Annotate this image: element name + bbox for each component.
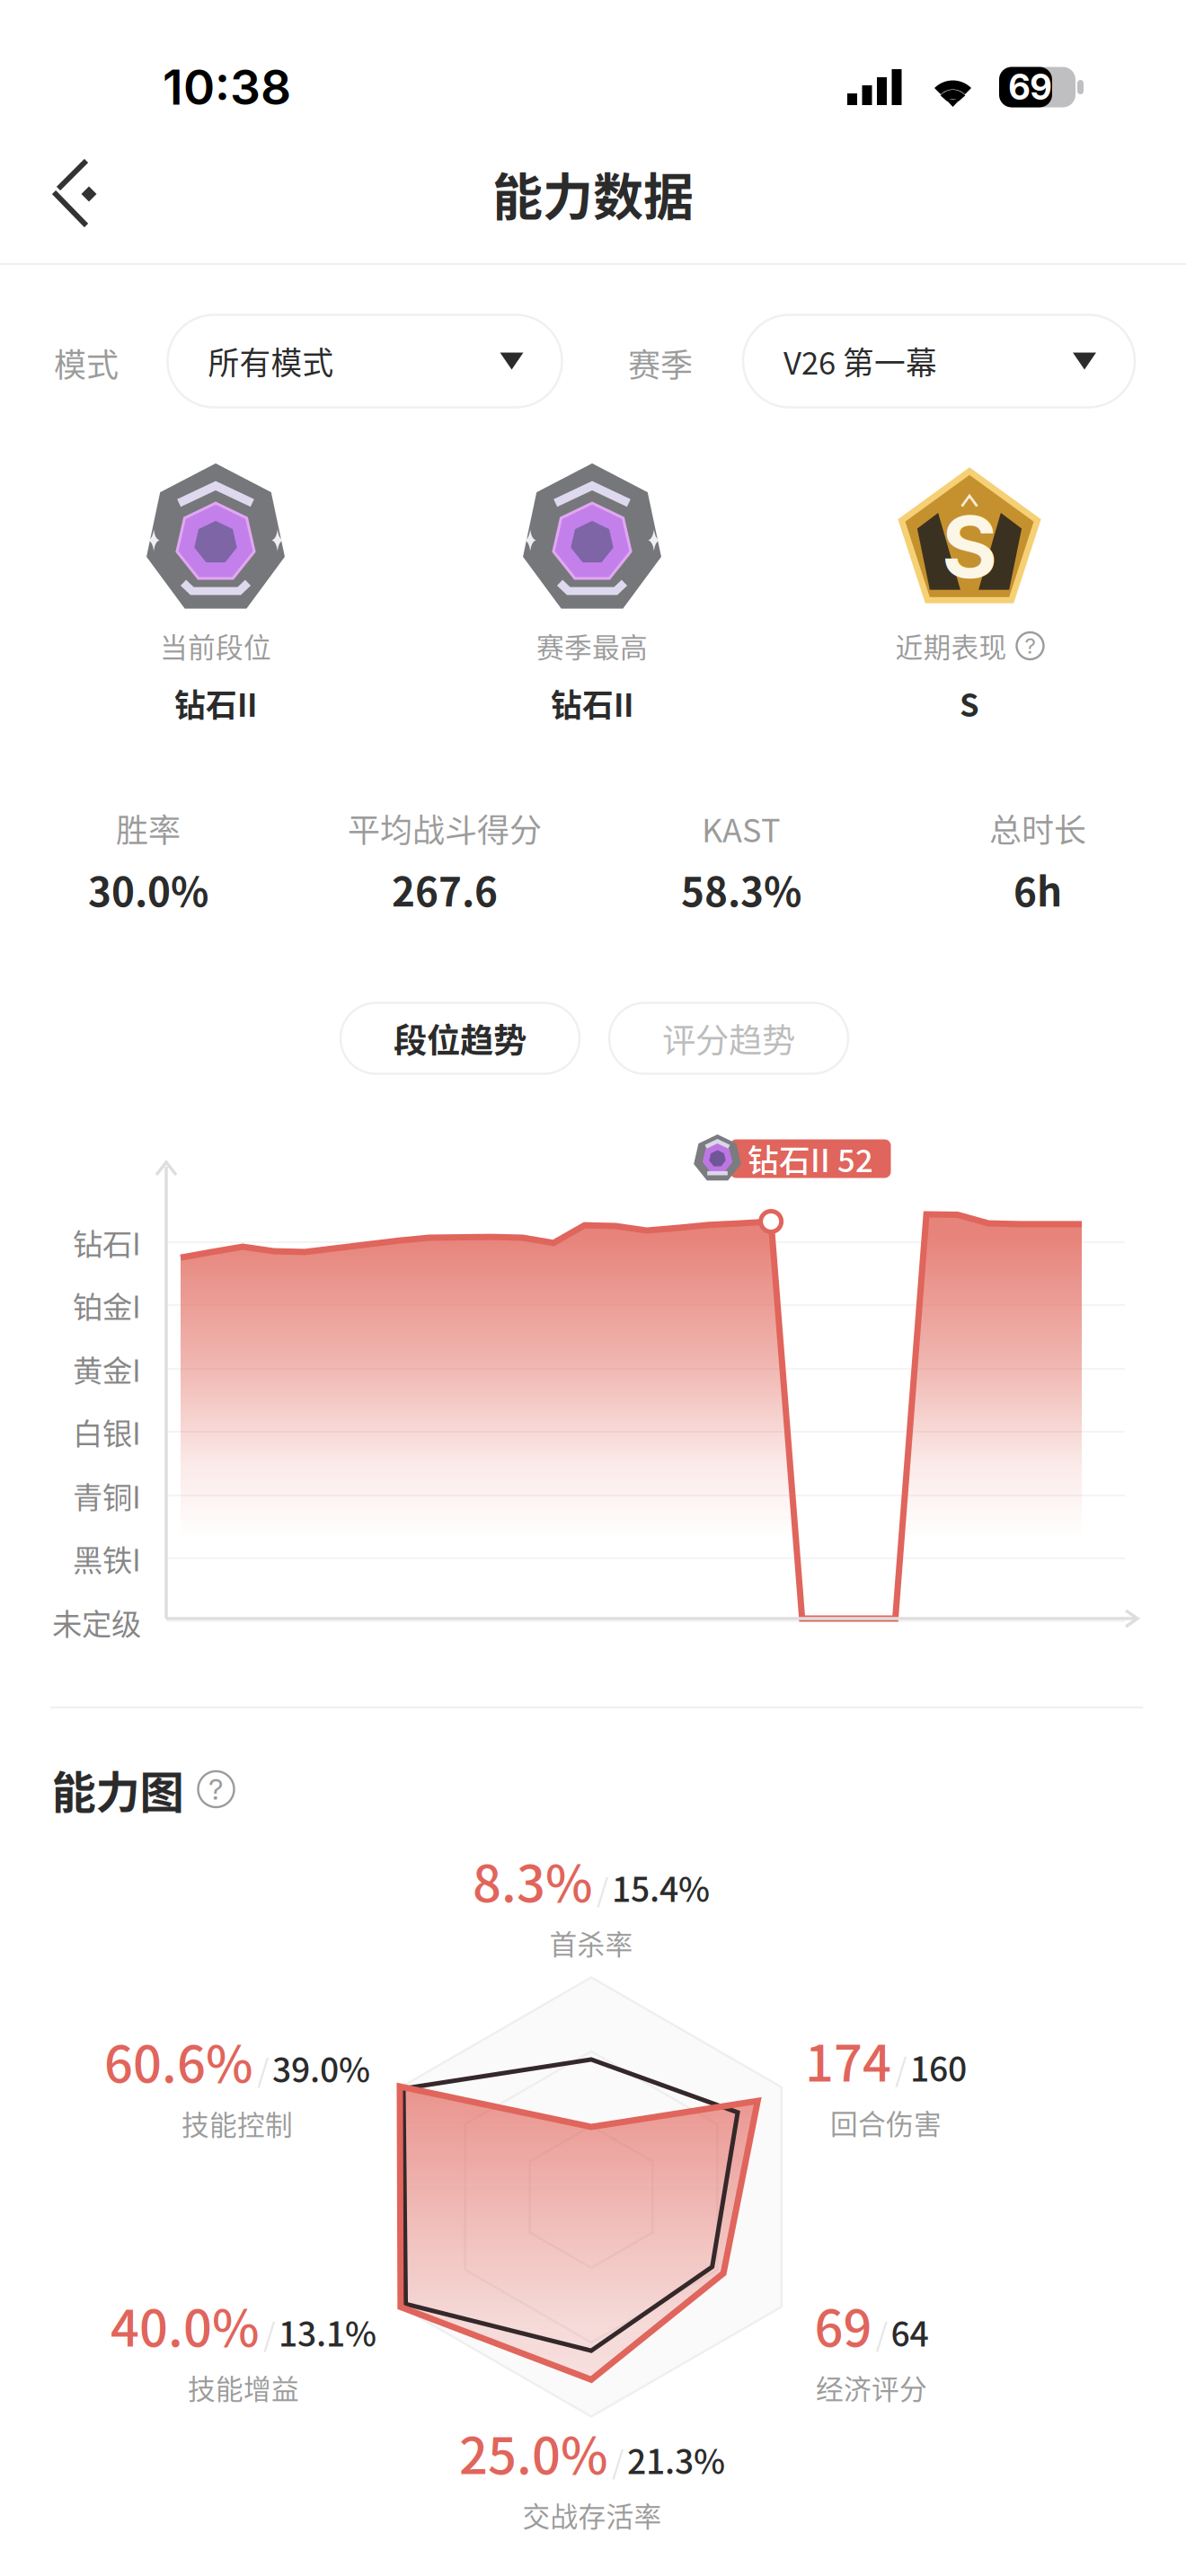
staticText: 40.0% (111, 2288, 260, 2361)
button[interactable]: 所有模式 (168, 315, 562, 407)
staticText: / (597, 1866, 609, 1911)
staticText: KAST (702, 805, 781, 851)
staticText: 15.4% (612, 1863, 710, 1912)
staticText: 6h (1013, 861, 1062, 918)
button[interactable]: 段位趋势 (341, 1003, 580, 1074)
staticText: 钻石I (73, 1221, 141, 1264)
staticText: 近期表现 (895, 626, 1007, 666)
staticText: 回合伤害 (830, 2102, 942, 2142)
staticText: / (876, 2310, 888, 2355)
staticText: 赛季 (628, 339, 693, 386)
staticText: 能力数据 (492, 157, 694, 230)
staticText: 模式 (54, 339, 119, 386)
staticText: 8.3% (473, 1844, 593, 1916)
staticText: 64 (891, 2308, 929, 2356)
staticText: 所有模式 (208, 339, 334, 384)
staticText: ? (208, 1772, 224, 1807)
staticText: 13.1% (279, 2308, 376, 2356)
staticText: 胜率 (116, 805, 181, 851)
staticText: S (942, 495, 997, 598)
staticText: 段位趋势 (394, 1014, 527, 1063)
staticText: 69 (814, 2288, 872, 2361)
staticText: V26 第一幕 (783, 339, 937, 384)
staticText: 25.0% (459, 2416, 608, 2489)
staticText: 经济评分 (816, 2367, 927, 2407)
staticText: 青铜I (73, 1474, 141, 1517)
staticText: ? (1025, 633, 1036, 659)
staticText: 黑铁I (73, 1537, 141, 1580)
staticText: 未定级 (52, 1600, 141, 1644)
staticText: 60.6% (104, 2024, 253, 2097)
staticText: 58.3% (681, 861, 801, 918)
staticText: / (895, 2045, 907, 2090)
button[interactable]: V26 第一幕 (743, 315, 1135, 407)
staticText: 钻石II (174, 681, 257, 726)
staticText: 267.6 (392, 861, 498, 918)
staticText: / (263, 2310, 276, 2355)
staticText: 174 (805, 2023, 891, 2096)
staticText: 30.0% (88, 861, 208, 918)
staticText: 铂金I (73, 1283, 141, 1327)
staticText: S (960, 681, 979, 726)
button[interactable]: Back (26, 144, 125, 243)
staticText: 技能增益 (188, 2367, 299, 2407)
staticText: 钻石II (551, 681, 633, 726)
staticText: 黄金I (73, 1347, 141, 1391)
staticText: 当前段位 (160, 626, 271, 666)
staticText: 160 (910, 2043, 967, 2091)
staticText: 首杀率 (549, 1923, 633, 1963)
staticText: 钻石II 52 (748, 1136, 873, 1181)
staticText: 21.3% (627, 2435, 725, 2484)
button[interactable]: 评分趋势 (609, 1003, 848, 1074)
staticText: / (612, 2438, 624, 2483)
staticText: 评分趋势 (662, 1014, 795, 1063)
staticText: 交战存活率 (522, 2495, 662, 2535)
staticText: 能力图 (52, 1757, 184, 1821)
staticText: 技能控制 (181, 2103, 293, 2143)
staticText: / (257, 2046, 270, 2091)
staticText: 10:38 (163, 58, 291, 116)
staticText: 69 (1009, 66, 1052, 108)
staticText: 39.0% (272, 2043, 370, 2092)
staticText: 总时长 (989, 805, 1086, 851)
staticText: 平均战斗得分 (348, 805, 542, 851)
staticText: 白银I (73, 1410, 141, 1453)
staticText: 赛季最高 (536, 626, 648, 666)
